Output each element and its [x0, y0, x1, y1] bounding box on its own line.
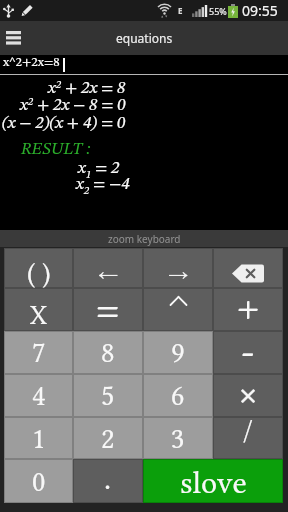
staticText: 09:55: [242, 1, 278, 20]
staticText: /: [243, 413, 254, 448]
button[interactable]: -: [213, 331, 283, 374]
staticText: .: [104, 460, 112, 496]
button[interactable]: ×: [213, 374, 283, 417]
staticText: +: [236, 282, 261, 325]
staticText: X: [30, 301, 48, 331]
staticText: 55%: [209, 5, 227, 17]
button[interactable]: 9: [143, 331, 213, 374]
staticText: 3: [171, 422, 185, 455]
button[interactable]: [0, 21, 40, 55]
button[interactable]: 6: [143, 374, 213, 417]
button[interactable]: [213, 248, 283, 288]
staticText: x2 + 2x − 8 = 0: [20, 97, 126, 114]
button[interactable]: 1: [4, 417, 73, 459]
staticText: (x − 2)(x + 4) = 0: [2, 115, 126, 132]
staticText: →: [168, 264, 189, 285]
button[interactable]: slove: [143, 459, 283, 503]
button[interactable]: =: [73, 288, 143, 331]
staticText: zoom keyboard: [108, 232, 181, 246]
button[interactable]: 4: [4, 374, 73, 417]
staticText: E: [178, 5, 183, 16]
staticText: slove: [180, 464, 247, 500]
staticText: =: [95, 283, 121, 326]
button[interactable]: ←: [73, 248, 143, 288]
staticText: x^2+2x=8: [3, 56, 60, 69]
staticText: 9: [171, 336, 185, 369]
button[interactable]: 3: [143, 417, 213, 459]
button[interactable]: 2: [73, 417, 143, 459]
staticText: equations: [116, 30, 173, 46]
staticText: ←: [98, 264, 119, 285]
staticText: 7: [32, 336, 46, 369]
staticText: RESULT :: [21, 141, 91, 158]
button[interactable]: [143, 288, 213, 331]
button[interactable]: ( ): [4, 248, 73, 288]
staticText: ( ): [27, 257, 51, 289]
button[interactable]: 7: [4, 331, 73, 374]
staticText: 1: [32, 422, 46, 455]
button[interactable]: 5: [73, 374, 143, 417]
button[interactable]: →: [143, 248, 213, 288]
button[interactable]: +: [213, 288, 283, 331]
staticText: 8: [101, 336, 115, 369]
button[interactable]: .: [73, 459, 143, 503]
button[interactable]: X: [4, 288, 73, 331]
staticText: 2: [101, 422, 115, 455]
staticText: 0: [32, 465, 46, 498]
button[interactable]: 0: [4, 459, 73, 503]
staticText: -: [241, 329, 255, 372]
button[interactable]: 8: [73, 331, 143, 374]
staticText: 6: [171, 379, 185, 412]
button[interactable]: /: [213, 417, 283, 459]
staticText: x1 = 2: [78, 160, 120, 180]
staticText: 5: [101, 379, 115, 412]
staticText: x2 = −4: [76, 176, 130, 196]
staticText: x2 + 2x = 8: [48, 80, 126, 97]
staticText: ×: [236, 368, 261, 411]
staticText: 4: [32, 379, 46, 412]
